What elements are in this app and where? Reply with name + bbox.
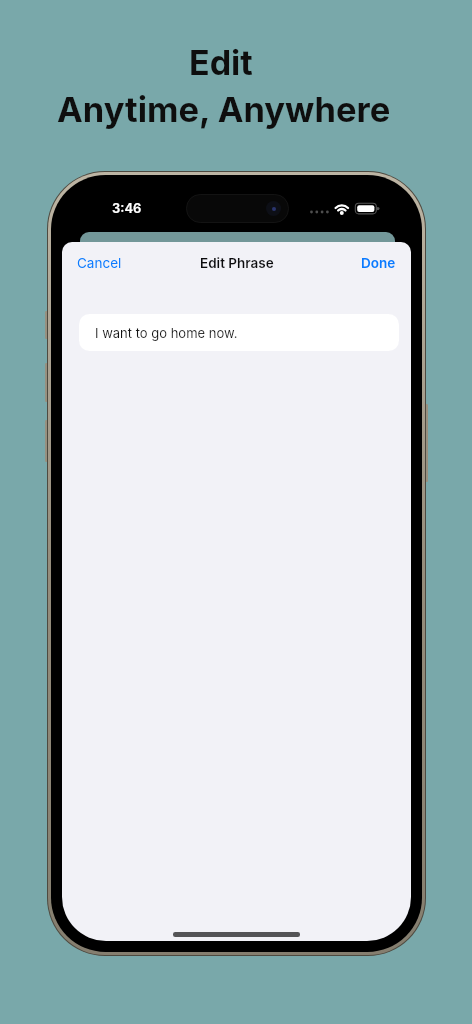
staticText: I want to go home now. — [95, 325, 238, 341]
staticText: Anytime, Anywhere — [57, 89, 391, 131]
button[interactable]: I want to go home now. — [79, 314, 399, 351]
staticText: Done — [361, 255, 396, 271]
staticText: Cancel — [77, 255, 122, 271]
button[interactable]: Done — [361, 255, 396, 271]
staticText: 3:46 — [112, 200, 142, 216]
staticText: Edit Phrase — [200, 255, 274, 271]
staticText: Edit — [189, 42, 253, 83]
button[interactable]: Cancel — [77, 255, 122, 271]
